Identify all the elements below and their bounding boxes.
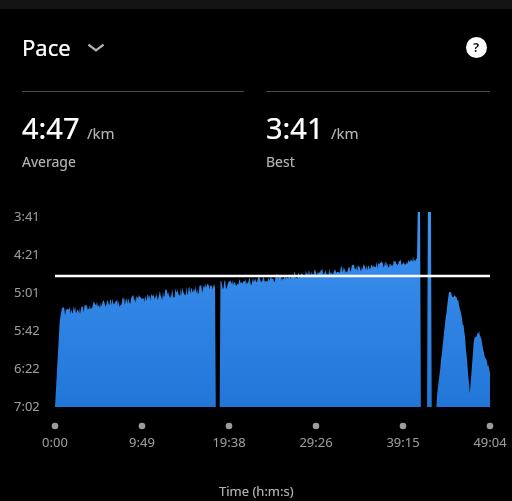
staticText: /km — [331, 123, 359, 143]
staticText: 9:49 — [129, 433, 155, 451]
staticText: Pace — [22, 32, 71, 62]
staticText: 4:21 — [14, 245, 40, 263]
staticText: 29:26 — [299, 433, 333, 451]
staticText: 3:41 — [14, 207, 40, 225]
staticText: 19:38 — [212, 433, 246, 451]
staticText: Time (h:m:s) — [219, 482, 294, 500]
staticText: 6:22 — [14, 359, 40, 377]
staticText: ? — [473, 38, 480, 56]
staticText: Average — [22, 152, 76, 171]
staticText: 0:00 — [42, 433, 68, 451]
staticText: 5:42 — [14, 321, 40, 339]
staticText: 49:04 — [473, 433, 507, 451]
button[interactable]: Help — [460, 31, 492, 63]
button[interactable]: Pace — [14, 28, 113, 66]
staticText: /km — [87, 123, 115, 143]
staticText: 4:47 — [22, 108, 80, 147]
staticText: 7:02 — [14, 397, 40, 415]
staticText: 5:01 — [14, 283, 40, 301]
staticText: 3:41 — [266, 108, 324, 147]
staticText: Best — [266, 152, 295, 171]
staticText: 39:15 — [386, 433, 420, 451]
